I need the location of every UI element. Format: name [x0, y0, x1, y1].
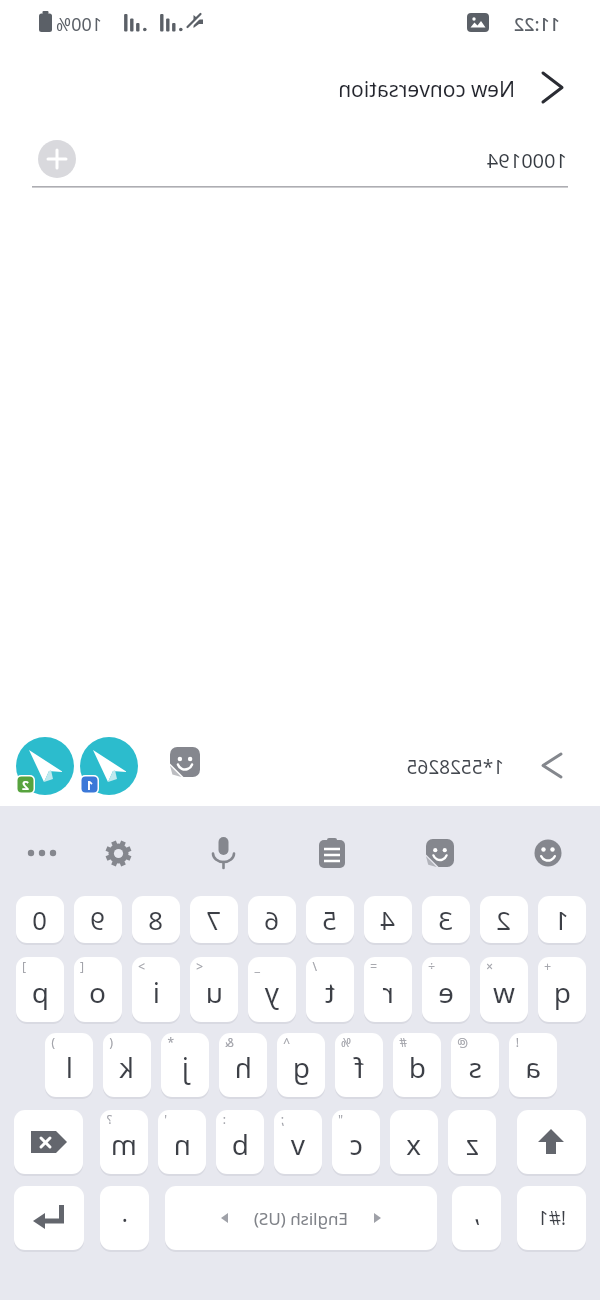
button[interactable]: j — [161, 1033, 209, 1097]
staticText: 2 — [22, 777, 29, 793]
staticText: 2 — [496, 902, 511, 937]
button[interactable]: k — [103, 1033, 151, 1097]
button[interactable]: 3 — [422, 896, 470, 943]
button[interactable]: m — [100, 1110, 148, 1174]
staticText: n — [173, 1125, 191, 1163]
staticText: h — [234, 1048, 252, 1086]
staticText: b — [231, 1125, 249, 1163]
button[interactable]: e — [422, 957, 470, 1022]
staticText: y — [264, 973, 279, 1011]
button[interactable]: r — [364, 957, 412, 1022]
button[interactable]: 6 — [248, 896, 296, 943]
staticText: !#1 — [537, 1205, 566, 1231]
staticText: * — [167, 1034, 174, 1050]
button[interactable] — [14, 1110, 83, 1174]
staticText: ( — [109, 1034, 113, 1050]
staticText: 1 — [86, 777, 93, 793]
staticText: # — [399, 1034, 407, 1050]
staticText: 11:22 — [513, 12, 560, 37]
staticText: c — [349, 1125, 363, 1163]
button[interactable]: 2 — [16, 737, 74, 795]
staticText: p — [31, 973, 49, 1011]
button[interactable]: w — [480, 957, 528, 1022]
button[interactable]: d — [393, 1033, 441, 1097]
button[interactable] — [38, 140, 76, 178]
button[interactable]: v — [274, 1110, 322, 1174]
staticText: = — [370, 958, 377, 974]
staticText: k — [119, 1048, 134, 1086]
button[interactable]: 4 — [364, 896, 412, 943]
staticText: ? — [106, 1111, 112, 1127]
button[interactable]: i — [132, 957, 180, 1022]
staticText: 1*5528265 — [406, 754, 504, 780]
button[interactable] — [426, 839, 454, 867]
button[interactable]: 0 — [16, 896, 64, 943]
staticText: English (US) — [253, 1207, 348, 1230]
staticText: z — [465, 1125, 479, 1163]
button[interactable] — [104, 839, 133, 868]
button[interactable]: o — [74, 957, 122, 1022]
button[interactable] — [319, 838, 345, 868]
staticText: 1000194 — [486, 147, 567, 174]
button[interactable]: 2 — [480, 896, 528, 943]
button[interactable] — [534, 749, 568, 785]
staticText: ) — [51, 1034, 55, 1050]
staticText: 6 — [264, 902, 279, 937]
staticText: m — [110, 1125, 137, 1163]
button[interactable]: y — [248, 957, 296, 1022]
button[interactable]: g — [277, 1033, 325, 1097]
button[interactable] — [532, 68, 572, 108]
staticText: f — [354, 1048, 364, 1086]
button[interactable]: English (US) — [165, 1186, 437, 1250]
staticText: q — [553, 973, 571, 1011]
staticText: : — [222, 1111, 226, 1127]
staticText: ^ — [283, 1034, 290, 1050]
staticText: s — [468, 1048, 482, 1086]
button[interactable]: u — [190, 957, 238, 1022]
button[interactable]: a — [509, 1033, 557, 1097]
button[interactable]: 8 — [132, 896, 180, 943]
button[interactable]: !#1 — [517, 1186, 586, 1250]
staticText: l — [65, 1048, 73, 1086]
button[interactable] — [211, 837, 236, 870]
button[interactable]: f — [335, 1033, 383, 1097]
staticText: 1 — [554, 902, 569, 937]
button[interactable]: b — [216, 1110, 264, 1174]
staticText: ! — [515, 1034, 519, 1050]
button[interactable]: h — [219, 1033, 267, 1097]
staticText: ' — [164, 1111, 167, 1127]
button[interactable]: . — [100, 1186, 149, 1250]
button[interactable] — [534, 839, 562, 867]
staticText: 0 — [32, 902, 47, 937]
staticText: a — [525, 1048, 541, 1086]
button[interactable] — [14, 1186, 84, 1250]
staticText: < — [196, 958, 203, 974]
staticText: 100% — [56, 12, 102, 37]
button[interactable]: n — [158, 1110, 206, 1174]
button[interactable]: c — [332, 1110, 380, 1174]
button[interactable]: 1 — [538, 896, 586, 943]
button[interactable]: z — [448, 1110, 496, 1174]
button[interactable]: q — [538, 957, 586, 1022]
staticText: 7 — [206, 902, 221, 937]
staticText: ÷ — [428, 958, 435, 974]
button[interactable]: x — [390, 1110, 438, 1174]
staticText: " — [338, 1111, 343, 1127]
button[interactable]: s — [451, 1033, 499, 1097]
button[interactable]: 9 — [74, 896, 122, 943]
staticText: , — [473, 1196, 480, 1229]
button[interactable]: p — [16, 957, 64, 1022]
staticText: w — [492, 973, 515, 1011]
button[interactable]: 5 — [306, 896, 354, 943]
button[interactable]: 1 — [80, 737, 138, 795]
staticText: × — [486, 958, 493, 974]
staticText: / — [312, 958, 317, 974]
button[interactable]: 7 — [190, 896, 238, 943]
staticText: v — [290, 1125, 305, 1163]
button[interactable]: , — [452, 1186, 501, 1250]
staticText: g — [292, 1048, 310, 1086]
staticText: t — [324, 973, 335, 1011]
button[interactable] — [517, 1110, 586, 1174]
button[interactable]: l — [45, 1033, 93, 1097]
button[interactable]: t — [306, 957, 354, 1022]
